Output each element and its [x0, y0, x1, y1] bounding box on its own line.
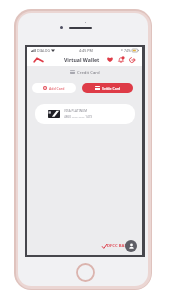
staticText: DIALOG: [37, 48, 50, 53]
staticText: Virtual Wallet: [64, 56, 100, 63]
staticText: Credit Card: [77, 69, 100, 75]
button[interactable]: Profile: [125, 240, 137, 252]
staticText: 4860 —— —— 1473: [64, 115, 93, 119]
button[interactable]: Notifications: [115, 54, 126, 65]
button[interactable]: Log out: [126, 54, 137, 65]
button[interactable]: Add Card: [32, 83, 76, 93]
staticText: DFCC BANK: [107, 243, 131, 249]
button[interactable]: Settle Card: [82, 83, 133, 93]
button[interactable]: Favourites: [104, 54, 115, 65]
staticText: VISA PLATINUM: [64, 109, 88, 113]
staticText: Add Card: [49, 86, 65, 91]
button[interactable]: Credit Card: [27, 68, 142, 76]
staticText: Settle Card: [102, 86, 121, 91]
staticText: 4:45 PM: [79, 48, 93, 53]
button[interactable]: VISA PLATINUM: [35, 104, 135, 124]
staticText: 74%: [124, 48, 131, 53]
